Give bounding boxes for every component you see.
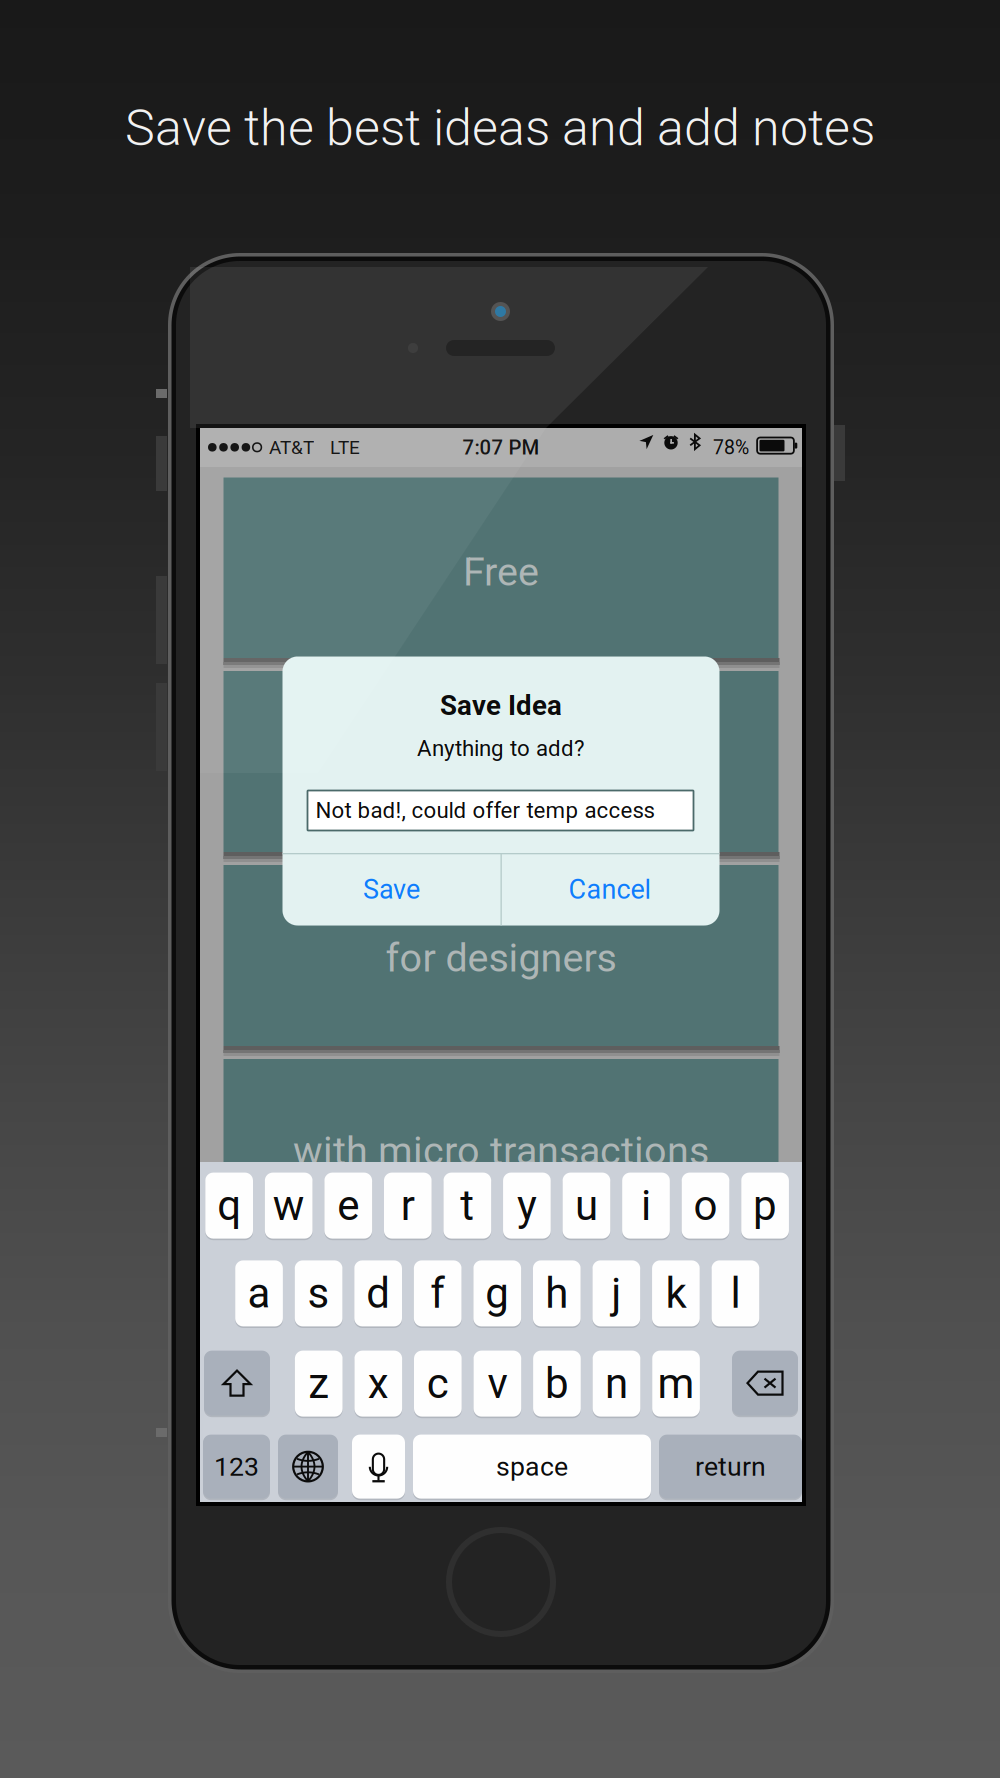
button[interactable]: w [265,1172,313,1239]
staticText: t [460,1181,474,1230]
staticText: g [485,1269,509,1318]
staticText: v [487,1359,507,1408]
button[interactable]: z [295,1350,343,1417]
button[interactable]: k [652,1260,700,1327]
staticText: Anything to add? [417,735,585,762]
button[interactable]: l [712,1260,759,1327]
button[interactable]: e [324,1172,372,1239]
staticText: with micro transactions [293,1128,709,1174]
staticText: Free [463,549,539,595]
button[interactable]: Delete [732,1350,798,1416]
button[interactable]: d [354,1260,402,1327]
button[interactable]: c [414,1350,462,1417]
button[interactable]: v [473,1350,521,1417]
button[interactable]: r [384,1172,432,1239]
staticText: Save the best ideas and add notes [125,99,875,157]
button[interactable]: q [205,1172,253,1239]
staticText: space [496,1451,568,1482]
staticText: Save [363,874,420,905]
button[interactable]: f [414,1260,462,1327]
staticText: return [695,1451,766,1482]
staticText: m [658,1359,695,1408]
button[interactable]: n [593,1350,640,1417]
staticText: j [611,1269,621,1318]
staticText: f [430,1269,445,1318]
staticText: e [337,1181,359,1230]
staticText: k [665,1269,686,1318]
button[interactable]: y [503,1172,551,1239]
button[interactable]: Shift [204,1350,270,1416]
staticText: w [273,1181,305,1230]
button[interactable]: p [741,1172,789,1239]
staticText: x [368,1359,389,1408]
button[interactable]: s [295,1260,342,1327]
staticText: b [545,1359,569,1408]
button[interactable]: b [533,1350,581,1417]
button[interactable]: h [533,1260,581,1327]
staticText: n [605,1359,628,1408]
staticText: r [401,1181,415,1230]
button[interactable]: Cancel [500,853,719,925]
button[interactable]: space [413,1434,651,1499]
staticText: y [517,1181,537,1230]
button[interactable]: j [592,1260,640,1327]
button[interactable]: return [659,1434,802,1499]
button[interactable]: Keyboard [278,1434,338,1499]
button[interactable]: x [354,1350,402,1417]
button[interactable]: 123 [203,1434,270,1499]
staticText: o [694,1181,718,1230]
button[interactable]: Save [282,853,500,925]
staticText: i [641,1181,651,1230]
button[interactable]: m [652,1350,700,1417]
staticText: h [545,1269,568,1318]
staticText: q [217,1181,241,1230]
staticText: LTE [330,436,360,459]
staticText: Not bad!, could offer temp access [315,797,654,824]
staticText: p [753,1181,777,1230]
staticText: z [308,1359,329,1408]
staticText: Cancel [568,874,651,905]
button[interactable]: t [443,1172,491,1239]
button[interactable]: g [473,1260,521,1327]
staticText: 78% [713,436,749,459]
staticText: d [366,1269,390,1318]
button[interactable]: a [235,1260,283,1327]
staticText: a [247,1269,270,1318]
staticText: 7:07 PM [462,436,539,459]
staticText: c [427,1359,449,1408]
button[interactable]: o [682,1172,729,1239]
button[interactable]: i [622,1172,670,1239]
staticText: 123 [214,1451,259,1482]
staticText: Save Idea [440,689,562,722]
staticText: s [308,1269,330,1318]
button[interactable]: Dictate [352,1434,405,1499]
staticText: u [575,1181,598,1230]
staticText: for designers [385,935,616,981]
staticText: AT&T [269,436,314,459]
staticText: l [730,1269,740,1318]
button[interactable]: u [563,1172,610,1239]
